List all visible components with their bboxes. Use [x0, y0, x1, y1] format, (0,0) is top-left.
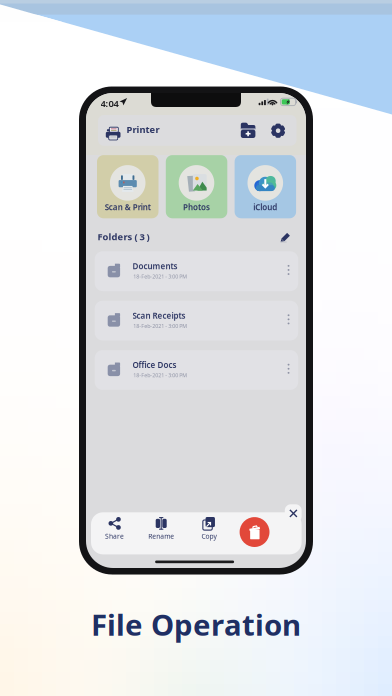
staticText: File Operation	[91, 605, 301, 644]
staticText: Copy	[201, 532, 216, 541]
button[interactable]: Settings	[266, 118, 290, 143]
staticText: iCloud	[253, 202, 277, 212]
staticText: 18-Feb-2021 - 3:00 PM	[133, 273, 187, 280]
button[interactable]: New folder	[236, 118, 260, 143]
button[interactable]: Close	[284, 504, 302, 522]
staticText: Scan Receipts	[132, 310, 185, 321]
staticText: 4:04	[100, 97, 118, 110]
button[interactable]: Rename	[142, 516, 180, 545]
staticText: Documents	[132, 261, 177, 271]
staticText: Office Docs	[132, 360, 176, 370]
staticText: Folders ( 3 )	[98, 230, 150, 243]
button[interactable]: Scan Receipts	[95, 301, 298, 340]
staticText: Printer	[127, 123, 160, 135]
staticText: Photos	[183, 202, 210, 212]
staticText: Rename	[148, 532, 174, 541]
staticText: Share	[105, 532, 124, 541]
button[interactable]: Photos	[166, 155, 227, 218]
staticText: 18-Feb-2021 - 3:00 PM	[133, 372, 187, 379]
staticText: Scan & Print	[105, 202, 151, 212]
button[interactable]: Share	[96, 516, 134, 545]
button[interactable]: iCloud	[235, 155, 296, 218]
button[interactable]: Documents	[95, 251, 298, 291]
button[interactable]: Copy	[190, 516, 228, 545]
button[interactable]: Delete	[240, 517, 269, 547]
button[interactable]: Office Docs	[95, 350, 298, 390]
button[interactable]: Edit	[276, 227, 295, 248]
button[interactable]: Scan & Print	[97, 155, 158, 218]
staticText: 18-Feb-2021 - 3:00 PM	[133, 322, 187, 329]
